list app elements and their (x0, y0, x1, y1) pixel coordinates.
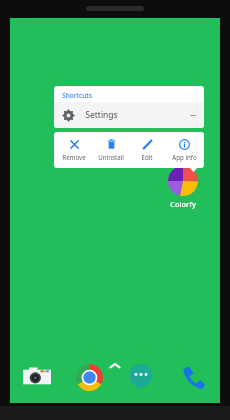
button[interactable]: App info (167, 137, 201, 163)
button[interactable]: Settings (54, 102, 204, 128)
button[interactable]: Chrome (74, 362, 104, 392)
button[interactable]: Messages (126, 362, 156, 392)
staticText: Settings (85, 109, 118, 121)
staticText: App info (172, 153, 197, 161)
button[interactable]: Colorfy (168, 166, 198, 209)
staticText: Shortcuts (62, 91, 92, 100)
button[interactable]: Camera (22, 362, 52, 392)
staticText: Colorfy (170, 199, 196, 209)
button[interactable]: Edit (130, 137, 164, 163)
staticText: Edit (141, 153, 153, 161)
button[interactable]: Open app drawer (109, 363, 121, 369)
staticText: Remove (62, 153, 86, 161)
button[interactable]: Uninstall (94, 137, 128, 163)
staticText: Uninstall (98, 153, 124, 161)
button[interactable]: Remove (57, 137, 91, 163)
button[interactable]: Phone (178, 362, 208, 392)
